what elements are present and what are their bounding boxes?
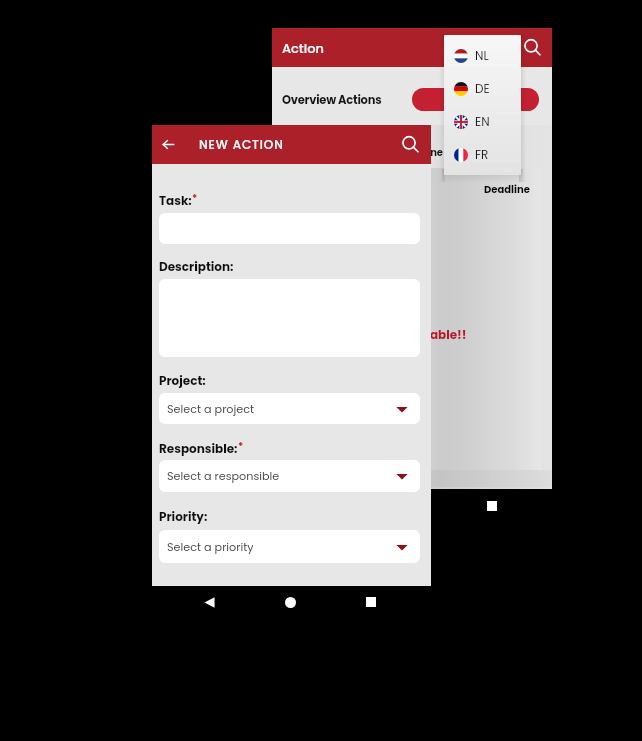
button[interactable]: DE (444, 72, 521, 105)
button[interactable]: Search (522, 37, 543, 58)
staticText: Project: (159, 372, 206, 389)
staticText: DE (475, 80, 490, 97)
button[interactable]: NL (444, 39, 521, 72)
button[interactable] (412, 88, 539, 111)
staticText: Action (282, 39, 324, 57)
staticText: Deadline (484, 182, 530, 196)
button[interactable]: Recents (477, 491, 507, 521)
staticText: EN (475, 113, 490, 130)
staticText: Filter on Deadline (354, 145, 444, 159)
staticText: Priority: (159, 508, 208, 525)
button[interactable]: Home (275, 587, 305, 617)
button[interactable]: Select a priority (159, 530, 420, 563)
staticText: Select a project (167, 401, 255, 417)
staticText: FR (475, 146, 489, 163)
staticText: Select a priority (167, 539, 254, 555)
button[interactable]: Recents (356, 587, 386, 617)
button[interactable]: EN (444, 105, 521, 138)
button[interactable]: Back (194, 587, 224, 617)
button[interactable]: Action (272, 28, 552, 67)
staticText: * (192, 191, 198, 205)
staticText: Overview Actions (282, 92, 382, 108)
button[interactable]: Select a project (159, 393, 420, 424)
staticText: Responsible: (159, 440, 238, 457)
staticText: Select a responsible (167, 468, 280, 484)
button[interactable]: Search (400, 134, 421, 155)
button[interactable]: FR (444, 138, 521, 171)
staticText: Task: (159, 192, 192, 209)
staticText: * (238, 439, 244, 453)
button[interactable]: Home (395, 491, 425, 521)
staticText: NL (475, 47, 489, 64)
button[interactable]: Back (314, 491, 344, 521)
staticText: No actions available!! (331, 326, 467, 343)
staticText: NEW ACTION (199, 136, 284, 153)
button[interactable]: Select a responsible (159, 460, 420, 492)
button[interactable]: Back (160, 136, 177, 153)
staticText: Description: (159, 258, 234, 275)
